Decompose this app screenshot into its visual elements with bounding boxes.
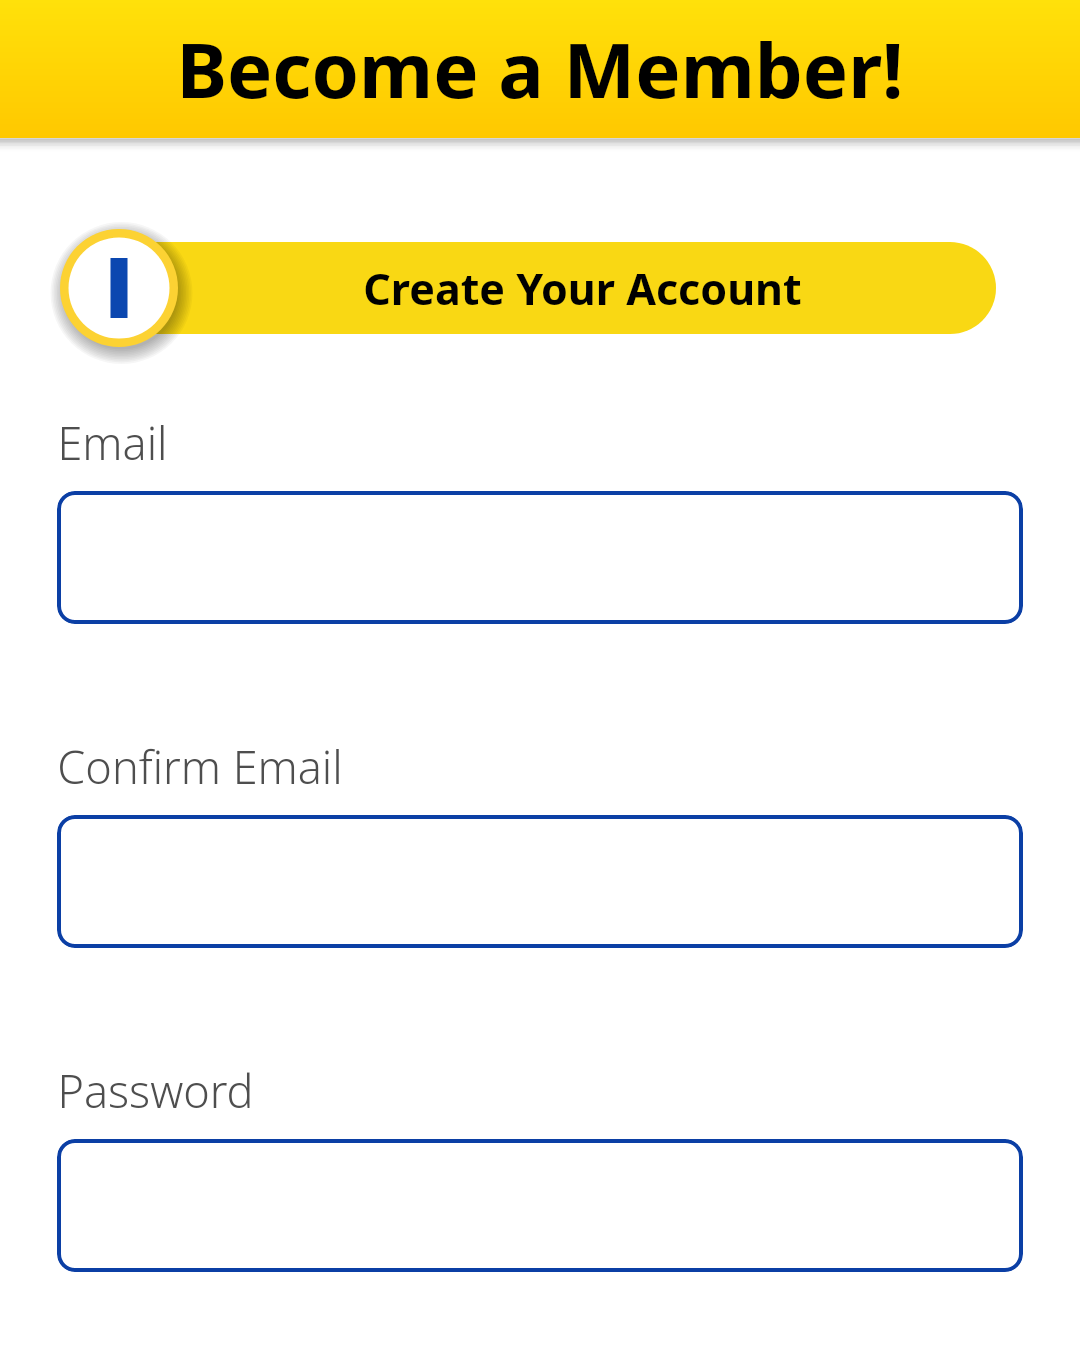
button[interactable] — [57, 815, 1023, 948]
staticText: Password — [57, 1060, 254, 1121]
staticText: Become a Member! — [176, 17, 904, 121]
button[interactable]: Create Your Account — [104, 242, 996, 334]
staticText: Confirm Email — [57, 736, 343, 797]
button[interactable]: Step 1 — [60, 229, 178, 347]
button[interactable] — [57, 491, 1023, 624]
staticText: Create Your Account — [363, 259, 802, 318]
staticText: Email — [57, 412, 168, 473]
button[interactable] — [57, 1139, 1023, 1272]
